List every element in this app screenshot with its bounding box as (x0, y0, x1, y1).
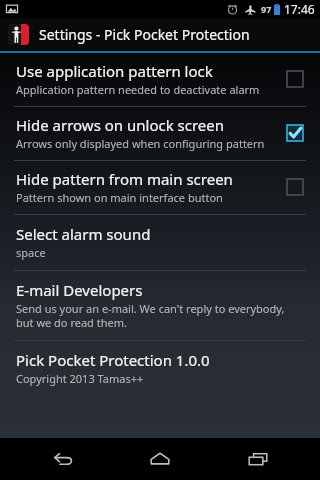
staticText: Select alarm sound (16, 224, 151, 244)
staticText: space (16, 245, 46, 260)
button[interactable]: Pick Pocket Protection 1.0.0 (0, 341, 320, 396)
staticText: Pick Pocket Protection 1.0.0 (16, 350, 210, 370)
button[interactable]: Unchecked (280, 172, 310, 202)
button[interactable]: Home (125, 438, 195, 480)
button[interactable]: Recent apps (223, 438, 293, 480)
button[interactable]: Use application pattern lock (0, 53, 320, 106)
staticText: Arrows only displayed when configuring p… (16, 136, 265, 151)
staticText: E-mail Developers (16, 280, 143, 300)
button[interactable]: Settings - Pick Pocket Protection (0, 18, 320, 51)
button[interactable]: Back (28, 438, 98, 480)
staticText: Copyright 2013 Tamas++ (16, 371, 144, 386)
staticText: 17:46 (284, 1, 315, 17)
button[interactable]: Select alarm sound (0, 215, 320, 270)
button[interactable]: E-mail Developers (0, 271, 320, 340)
staticText: Settings - Pick Pocket Protection (39, 25, 250, 44)
button[interactable]: Checked (280, 118, 310, 148)
staticText: Hide arrows on unlock screen (16, 115, 225, 135)
staticText: Pattern shown on main interface button (16, 190, 223, 205)
staticText: 97 (261, 3, 272, 15)
staticText: Send us your an e-mail. We can't reply t… (16, 301, 304, 330)
button[interactable]: Hide arrows on unlock screen (0, 107, 320, 160)
button[interactable]: Unchecked (280, 64, 310, 94)
staticText: Use application pattern lock (16, 61, 213, 81)
staticText: Application pattern needed to deactivate… (16, 82, 260, 97)
staticText: Hide pattern from main screen (16, 169, 233, 189)
button[interactable]: Hide pattern from main screen (0, 161, 320, 214)
